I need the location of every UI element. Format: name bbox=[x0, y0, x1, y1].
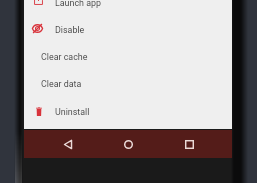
staticText: Clear data bbox=[41, 79, 82, 89]
button[interactable]: Recent apps bbox=[175, 130, 203, 158]
button[interactable]: Back bbox=[54, 130, 82, 158]
button[interactable]: Home bbox=[114, 130, 142, 158]
staticText: Clear cache bbox=[41, 52, 88, 62]
button[interactable]: Uninstall bbox=[24, 98, 232, 125]
staticText: Uninstall bbox=[55, 107, 90, 117]
staticText: Disable bbox=[55, 25, 85, 35]
staticText: Launch app bbox=[55, 0, 102, 8]
button[interactable]: Clear data bbox=[24, 70, 232, 97]
button[interactable]: Launch app bbox=[24, 0, 232, 16]
button[interactable]: Disable bbox=[24, 16, 232, 43]
button[interactable]: Clear cache bbox=[24, 43, 232, 70]
